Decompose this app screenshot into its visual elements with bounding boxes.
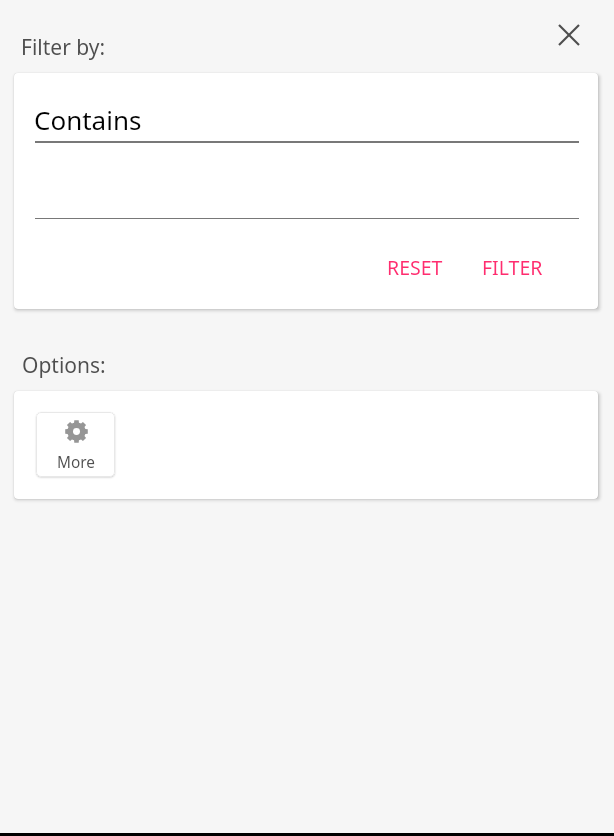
button[interactable]: Filter text	[35, 169, 579, 219]
button[interactable]: FILTER	[472, 246, 553, 289]
staticText: Contains	[34, 102, 142, 137]
staticText: More	[57, 452, 95, 473]
button[interactable]: Contains	[35, 91, 579, 143]
button[interactable]: Close	[547, 13, 591, 57]
staticText: FILTER	[482, 254, 543, 281]
staticText: RESET	[387, 254, 443, 281]
staticText: Filter by:	[21, 33, 106, 62]
staticText: Options:	[22, 351, 106, 380]
button[interactable]: More	[36, 412, 115, 477]
button[interactable]: RESET	[377, 246, 453, 289]
